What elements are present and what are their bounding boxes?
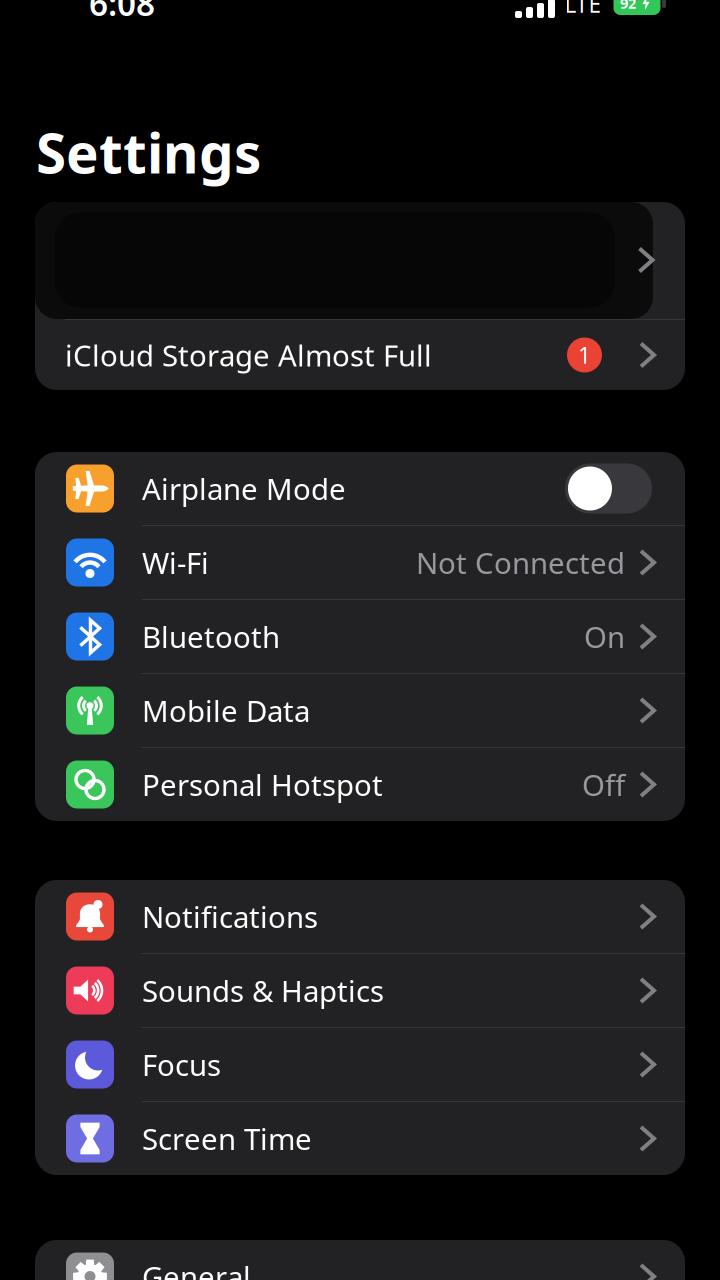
button[interactable]: Airplane Mode xyxy=(35,452,685,525)
staticText: 1 xyxy=(578,340,591,370)
button[interactable]: Focus xyxy=(35,1028,685,1101)
button[interactable]: Personal Hotspot xyxy=(35,748,685,821)
staticText: LTE xyxy=(564,0,601,19)
button[interactable]: Notifications xyxy=(35,880,685,953)
staticText: Sounds & Haptics xyxy=(142,971,384,1010)
staticText: Notifications xyxy=(142,897,318,936)
staticText: Off xyxy=(582,765,625,804)
staticText: Wi-Fi xyxy=(142,543,209,582)
button[interactable]: Screen Time xyxy=(35,1102,685,1175)
staticText: Bluetooth xyxy=(142,617,280,656)
staticText: iCloud Storage Almost Full xyxy=(65,335,432,374)
staticText: 92 xyxy=(620,0,636,13)
staticText: Screen Time xyxy=(142,1119,312,1158)
button[interactable]: iCloud Storage Almost Full xyxy=(35,320,685,390)
staticText: 6:08 xyxy=(89,0,155,25)
button[interactable]: Sounds & Haptics xyxy=(35,954,685,1027)
staticText: On xyxy=(584,617,625,656)
staticText: Not Connected xyxy=(416,543,625,582)
button[interactable]: Wi-Fi xyxy=(35,526,685,599)
button[interactable]: Bluetooth xyxy=(35,600,685,673)
staticText: Focus xyxy=(142,1045,221,1084)
button[interactable]: Apple ID xyxy=(35,202,685,319)
button[interactable]: General xyxy=(35,1240,685,1280)
staticText: Personal Hotspot xyxy=(142,765,383,804)
staticText: General xyxy=(142,1257,251,1280)
staticText: Airplane Mode xyxy=(142,469,346,508)
staticText: Mobile Data xyxy=(142,691,310,730)
staticText: Settings xyxy=(36,116,261,189)
button[interactable]: Mobile Data xyxy=(35,674,685,747)
